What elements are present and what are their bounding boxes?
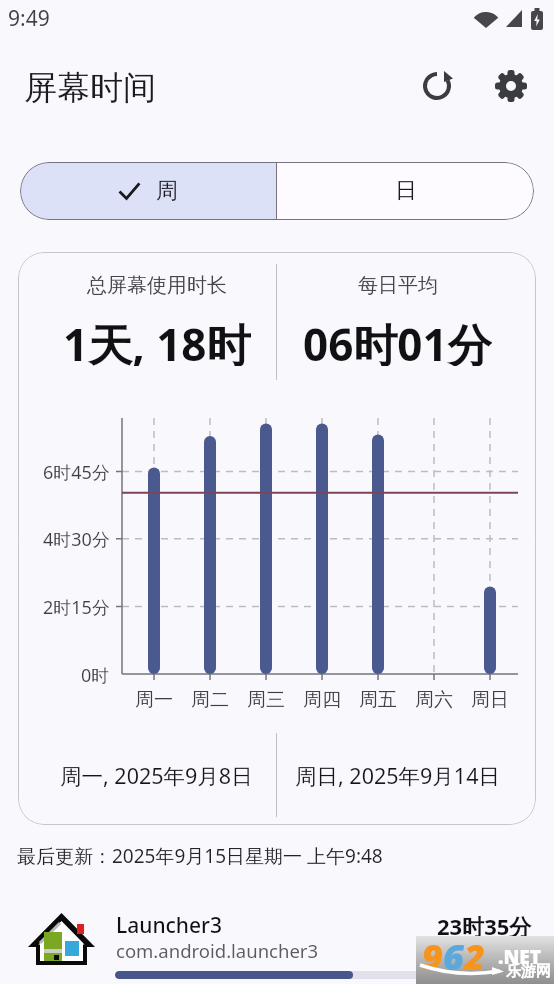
- button[interactable]: 周: [20, 162, 276, 220]
- button[interactable]: [489, 64, 533, 108]
- staticText: 周五: [359, 688, 397, 712]
- staticText: 2时15分: [43, 595, 110, 620]
- staticText: 2: [464, 932, 485, 980]
- staticText: 日: [395, 177, 417, 205]
- staticText: 周三: [247, 688, 285, 712]
- staticText: 6: [443, 932, 464, 980]
- staticText: 周二: [191, 688, 229, 712]
- staticText: 周: [156, 177, 178, 205]
- staticText: 乐游网: [506, 962, 551, 981]
- staticText: .NET: [498, 944, 541, 970]
- staticText: 周四: [303, 688, 341, 712]
- staticText: 周日, 2025年9月14日: [295, 761, 500, 790]
- staticText: 9:49: [8, 4, 50, 33]
- staticText: 0时: [81, 663, 110, 688]
- staticText: 4时30分: [43, 527, 110, 552]
- staticText: 每日平均: [358, 273, 438, 298]
- staticText: 周日: [471, 688, 509, 712]
- staticText: 周六: [415, 688, 453, 712]
- staticText: Launcher3: [116, 911, 222, 940]
- button[interactable]: [415, 64, 459, 108]
- button[interactable]: Launcher3: [0, 895, 554, 984]
- staticText: 23时35分: [437, 911, 532, 937]
- staticText: 9: [422, 932, 443, 980]
- staticText: com.android.launcher3: [116, 938, 319, 963]
- staticText: 06时01分: [303, 314, 492, 366]
- button[interactable]: 日: [277, 162, 534, 220]
- staticText: 周一: [135, 688, 173, 712]
- staticText: 1天, 18时: [63, 314, 251, 366]
- staticText: 周一, 2025年9月8日: [60, 761, 253, 790]
- staticText: 屏幕时间: [24, 67, 156, 109]
- staticText: 总屏幕使用时长: [87, 273, 227, 298]
- staticText: 6时45分: [43, 460, 110, 485]
- staticText: 最后更新：2025年9月15日星期一 上午9:48: [17, 843, 383, 869]
